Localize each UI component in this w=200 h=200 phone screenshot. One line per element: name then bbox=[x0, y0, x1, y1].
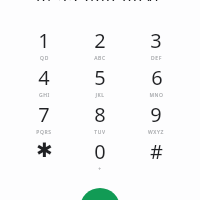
staticText: WXYZ bbox=[148, 129, 164, 136]
staticText: ABC bbox=[94, 55, 106, 62]
button[interactable]: 7 PQRS bbox=[16, 101, 72, 138]
staticText: TUV bbox=[94, 129, 106, 136]
staticText: 9 bbox=[150, 101, 162, 128]
staticText: MNO bbox=[149, 92, 164, 99]
staticText: 6 bbox=[151, 64, 163, 91]
staticText: 4 bbox=[38, 64, 50, 91]
staticText: DEF bbox=[151, 55, 162, 62]
staticText: PQRS bbox=[36, 129, 52, 136]
staticText: 8 bbox=[94, 101, 106, 128]
button[interactable]: # bbox=[128, 138, 184, 175]
staticText: 0 bbox=[94, 138, 106, 165]
staticText: 1 bbox=[38, 27, 50, 54]
staticText: ✱ bbox=[36, 138, 53, 161]
staticText: 0522 000 0045 bbox=[36, 0, 165, 1]
staticText: # bbox=[150, 138, 163, 165]
button[interactable]: 0 + bbox=[72, 138, 128, 175]
button[interactable]: 3 DEF bbox=[128, 27, 184, 64]
staticText: + bbox=[98, 166, 102, 173]
button[interactable]: 2 ABC bbox=[72, 27, 128, 64]
button[interactable]: 9 WXYZ bbox=[128, 101, 184, 138]
staticText: QD bbox=[40, 55, 49, 62]
staticText: 2 bbox=[94, 27, 106, 54]
button[interactable]: 8 TUV bbox=[72, 101, 128, 138]
button[interactable]: Call bbox=[80, 188, 120, 200]
staticText: 7 bbox=[38, 101, 50, 128]
staticText: 5 bbox=[94, 64, 106, 91]
button[interactable]: 4 GHI bbox=[16, 64, 72, 101]
button[interactable]: 6 MNO bbox=[128, 64, 184, 101]
button[interactable]: 1 QD bbox=[16, 27, 72, 64]
button[interactable]: 5 JKL bbox=[72, 64, 128, 101]
button[interactable]: ✱ bbox=[16, 138, 72, 175]
staticText: JKL bbox=[95, 92, 105, 99]
staticText: GHI bbox=[39, 92, 50, 99]
staticText: 3 bbox=[150, 27, 162, 54]
